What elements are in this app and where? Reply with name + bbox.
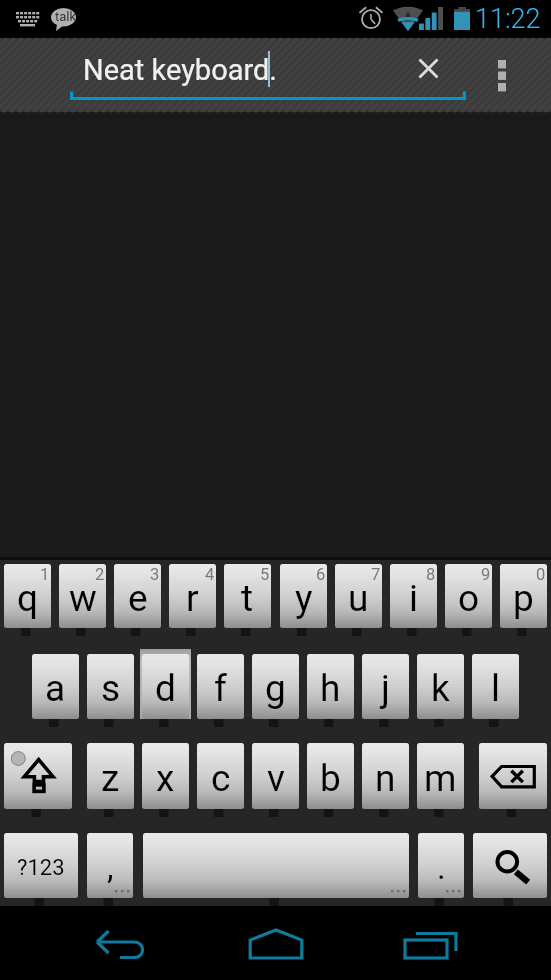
staticText: n: [375, 757, 396, 800]
staticText: s: [101, 667, 121, 710]
staticText: 9: [481, 565, 491, 584]
staticText: ,: [107, 848, 114, 887]
button[interactable]: ?123: [4, 833, 78, 898]
staticText: k: [431, 667, 450, 710]
button[interactable]: m: [417, 743, 464, 809]
staticText: c: [211, 757, 231, 800]
staticText: i: [409, 577, 418, 620]
staticText: a: [45, 667, 66, 710]
button[interactable]: z: [87, 743, 134, 809]
button[interactable]: q: [4, 564, 51, 628]
button[interactable]: n: [362, 743, 409, 809]
staticText: 0: [536, 565, 546, 584]
staticText: g: [265, 667, 286, 710]
staticText: 4: [205, 565, 215, 584]
button[interactable]: More options: [479, 45, 525, 105]
staticText: 2: [95, 565, 105, 584]
button[interactable]: s: [87, 654, 134, 719]
staticText: l: [491, 667, 500, 710]
button[interactable]: w: [59, 564, 106, 628]
staticText: p: [513, 577, 534, 620]
button[interactable]: g: [252, 654, 299, 719]
staticText: f: [214, 667, 227, 710]
button[interactable]: .: [418, 833, 464, 898]
button[interactable]: ,: [87, 833, 133, 898]
button[interactable]: j: [362, 654, 409, 719]
button[interactable]: h: [307, 654, 354, 719]
button[interactable]: v: [252, 743, 299, 809]
staticText: h: [320, 667, 341, 710]
staticText: 7: [371, 565, 381, 584]
button[interactable]: Home: [246, 920, 306, 968]
staticText: m: [424, 757, 457, 800]
staticText: x: [156, 757, 175, 800]
button[interactable]: d: [142, 654, 189, 719]
staticText: 11:22: [475, 3, 541, 35]
button[interactable]: Back: [92, 920, 152, 968]
button[interactable]: t: [224, 564, 271, 628]
button[interactable]: y: [280, 564, 327, 628]
button[interactable]: Delete: [479, 743, 547, 809]
staticText: talk: [55, 9, 77, 24]
button[interactable]: [143, 833, 409, 898]
staticText: t: [241, 577, 254, 620]
button[interactable]: Recent apps: [400, 920, 460, 968]
staticText: e: [128, 577, 148, 620]
staticText: 8: [426, 565, 436, 584]
button[interactable]: k: [417, 654, 464, 719]
staticText: v: [267, 757, 285, 800]
button[interactable]: b: [307, 743, 354, 809]
button[interactable]: x: [142, 743, 189, 809]
staticText: 6: [316, 565, 326, 584]
button[interactable]: Search: [473, 833, 547, 898]
staticText: j: [381, 667, 390, 710]
button[interactable]: l: [472, 654, 519, 719]
button[interactable]: r: [169, 564, 216, 628]
button[interactable]: Shift: [4, 743, 72, 809]
button[interactable]: i: [390, 564, 437, 628]
button[interactable]: p: [500, 564, 547, 628]
staticText: d: [155, 667, 176, 710]
staticText: r: [186, 577, 199, 620]
staticText: 3: [150, 565, 160, 584]
button[interactable]: Clear text: [403, 43, 453, 93]
staticText: u: [348, 577, 369, 620]
staticText: ?123: [17, 855, 65, 881]
staticText: 5: [260, 565, 270, 584]
staticText: Neat keyboard.: [83, 53, 278, 87]
button[interactable]: f: [197, 654, 244, 719]
staticText: 1: [40, 565, 50, 584]
button[interactable]: e: [114, 564, 161, 628]
button[interactable]: o: [445, 564, 492, 628]
staticText: y: [295, 577, 313, 620]
staticText: o: [458, 577, 480, 620]
staticText: b: [320, 757, 341, 800]
staticText: z: [101, 757, 120, 800]
staticText: q: [17, 577, 39, 620]
staticText: w: [69, 577, 97, 620]
button[interactable]: c: [197, 743, 244, 809]
staticText: .: [437, 848, 446, 887]
button[interactable]: a: [32, 654, 79, 719]
button[interactable]: u: [335, 564, 382, 628]
